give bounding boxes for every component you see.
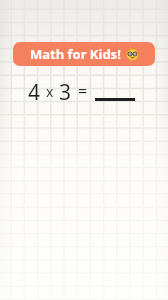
button[interactable]: 4 [28, 78, 135, 104]
staticText: x [46, 82, 54, 101]
other: Nerd face emoji [126, 48, 139, 61]
staticText: 3 [59, 78, 72, 104]
staticText: 4 [28, 78, 41, 104]
staticText: = [78, 80, 88, 102]
button[interactable]: Math for Kids! [13, 42, 155, 66]
staticText: Math for Kids! [30, 45, 121, 63]
